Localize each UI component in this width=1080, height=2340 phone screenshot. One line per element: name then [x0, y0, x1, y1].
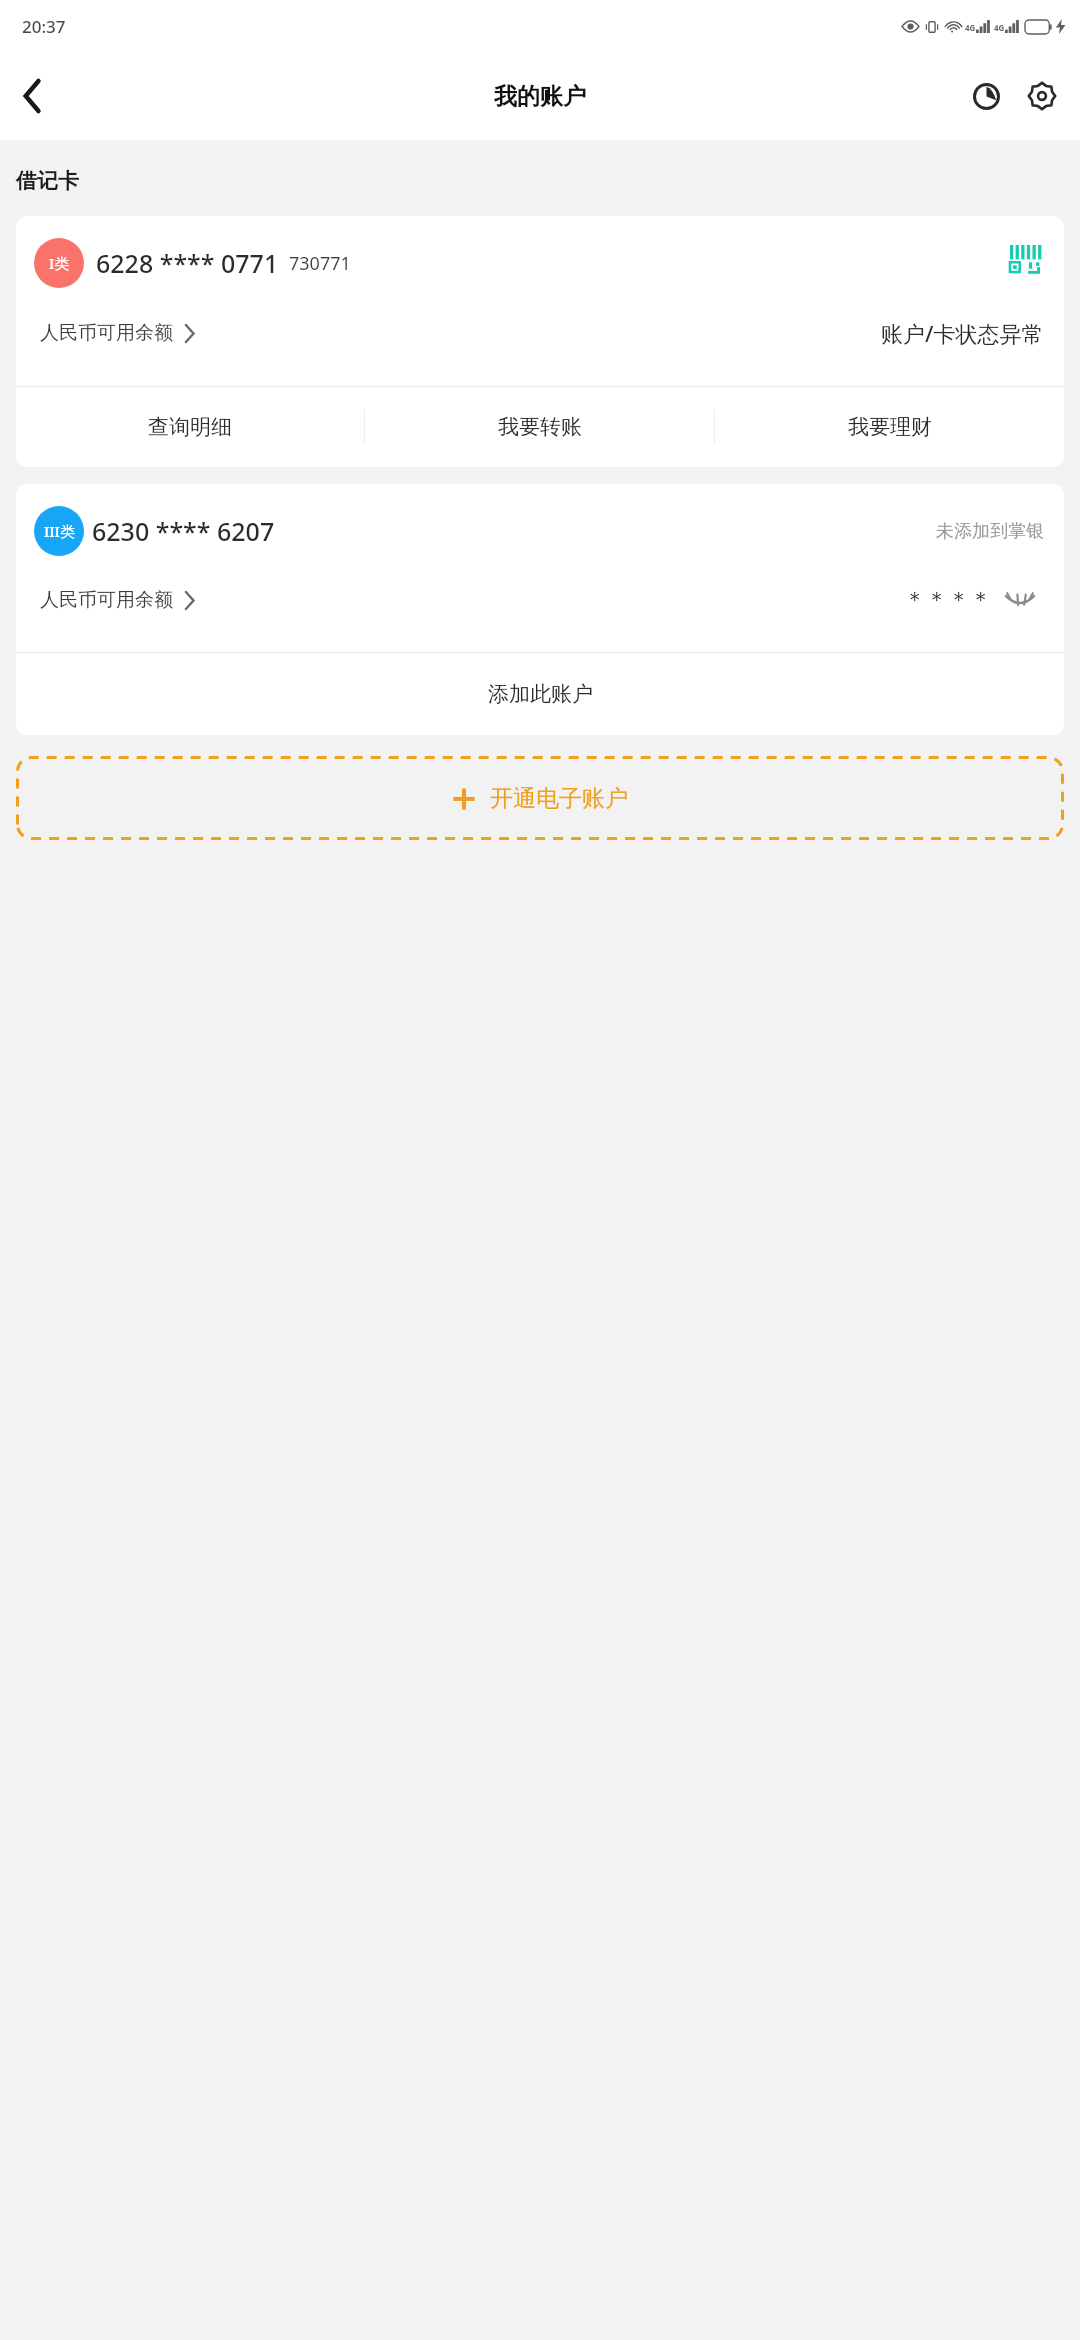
- staticText: 查询明细: [148, 414, 232, 440]
- staticText: 730771: [289, 251, 351, 276]
- button[interactable]: 开通电子账户: [16, 756, 1064, 840]
- staticText: 未添加到掌银: [936, 520, 1044, 543]
- staticText: 人民币可用余额: [40, 321, 173, 345]
- staticText: III类: [44, 521, 75, 541]
- button[interactable]: 我要转账: [365, 387, 714, 467]
- staticText: 我要转账: [498, 414, 582, 440]
- button[interactable]: 查询明细: [16, 387, 364, 467]
- staticText: 6228 **** 0771: [96, 246, 279, 280]
- button[interactable]: 我要理财: [715, 387, 1064, 467]
- button[interactable]: Settings: [1014, 68, 1070, 124]
- staticText: 我要理财: [848, 414, 932, 440]
- button[interactable]: 添加此账户: [16, 653, 1064, 735]
- button[interactable]: Show balance: [1004, 591, 1036, 609]
- staticText: 借记卡: [16, 168, 79, 194]
- button[interactable]: III类: [16, 484, 1064, 652]
- staticText: 开通电子账户: [490, 784, 628, 813]
- staticText: 人民币可用余额: [40, 588, 173, 612]
- staticText: 4G: [965, 22, 976, 33]
- button[interactable]: Back: [0, 64, 64, 128]
- button[interactable]: Statistics: [958, 68, 1014, 124]
- button[interactable]: Scan code: [1008, 245, 1044, 281]
- staticText: 我的账户: [494, 82, 586, 111]
- staticText: 4G: [994, 22, 1005, 33]
- staticText: 添加此账户: [488, 681, 593, 707]
- staticText: 账户/卡状态异常: [881, 318, 1044, 348]
- button[interactable]: I类: [16, 216, 1064, 386]
- staticText: 6230 **** 6207: [92, 514, 275, 548]
- staticText: I类: [49, 253, 70, 273]
- staticText: ＊＊＊＊: [904, 586, 992, 614]
- staticText: 20:37: [22, 15, 66, 38]
